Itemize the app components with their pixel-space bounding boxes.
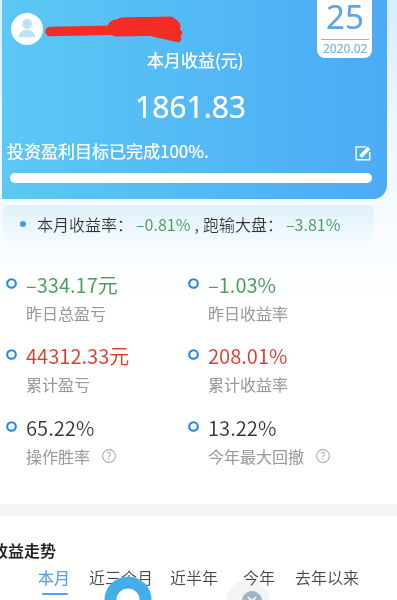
staticText: 本月收益率： xyxy=(37,212,134,235)
staticText: 208.01% xyxy=(208,341,288,370)
staticText: ? xyxy=(107,449,112,463)
button[interactable]: 近半年 xyxy=(162,563,227,595)
staticText: –0.81% xyxy=(136,212,191,235)
button[interactable]: 208.01% xyxy=(188,341,370,395)
button[interactable]: 25 xyxy=(317,0,372,58)
staticText: 1861.83 xyxy=(135,86,246,127)
staticText: 跑输大盘： xyxy=(203,212,284,235)
button[interactable]: 13.22% xyxy=(188,413,370,467)
staticText: 今年最大回撤 xyxy=(208,444,305,467)
staticText: 今年 xyxy=(243,565,276,588)
staticText: 本月收益(元) xyxy=(147,47,244,72)
staticText: 去年以来 xyxy=(295,565,360,588)
button[interactable]: –334.17元 xyxy=(6,270,188,324)
button[interactable]: –1.03% xyxy=(188,270,370,324)
staticText: 收益走势 xyxy=(0,538,57,561)
staticText: 近半年 xyxy=(170,565,219,588)
staticText: 65.22% xyxy=(26,413,95,442)
staticText: 13.22% xyxy=(208,413,277,442)
staticText: 累计盈亏 xyxy=(26,372,91,395)
staticText: , xyxy=(191,212,203,235)
button[interactable]: 本月收益率： xyxy=(3,205,374,241)
staticText: –334.17元 xyxy=(26,270,118,299)
staticText: ? xyxy=(321,449,326,463)
button[interactable]: 65.22% xyxy=(6,413,188,467)
staticText: 投资盈利目标已完成100%. xyxy=(7,138,209,163)
staticText: 累计收益率 xyxy=(208,372,289,395)
staticText: 44312.33元 xyxy=(26,341,130,370)
button[interactable]: Profile xyxy=(11,13,43,45)
button[interactable]: Edit goal xyxy=(351,141,375,165)
button[interactable]: 近三个月 xyxy=(81,563,162,595)
button[interactable]: 本月 xyxy=(30,563,79,597)
staticText: 2020.02 xyxy=(323,40,368,56)
staticText: 近三个月 xyxy=(89,565,154,588)
button[interactable]: 去年以来 xyxy=(287,563,368,595)
staticText: 25 xyxy=(326,0,364,39)
staticText: 本月 xyxy=(38,565,71,588)
button[interactable]: 今年 xyxy=(235,563,284,595)
button[interactable]: 44312.33元 xyxy=(6,341,188,395)
staticText: 昨日收益率 xyxy=(208,301,289,324)
staticText: –3.81% xyxy=(286,212,341,235)
staticText: 昨日总盈亏 xyxy=(26,301,107,324)
staticText: 操作胜率 xyxy=(26,444,91,467)
staticText: –1.03% xyxy=(208,270,276,299)
